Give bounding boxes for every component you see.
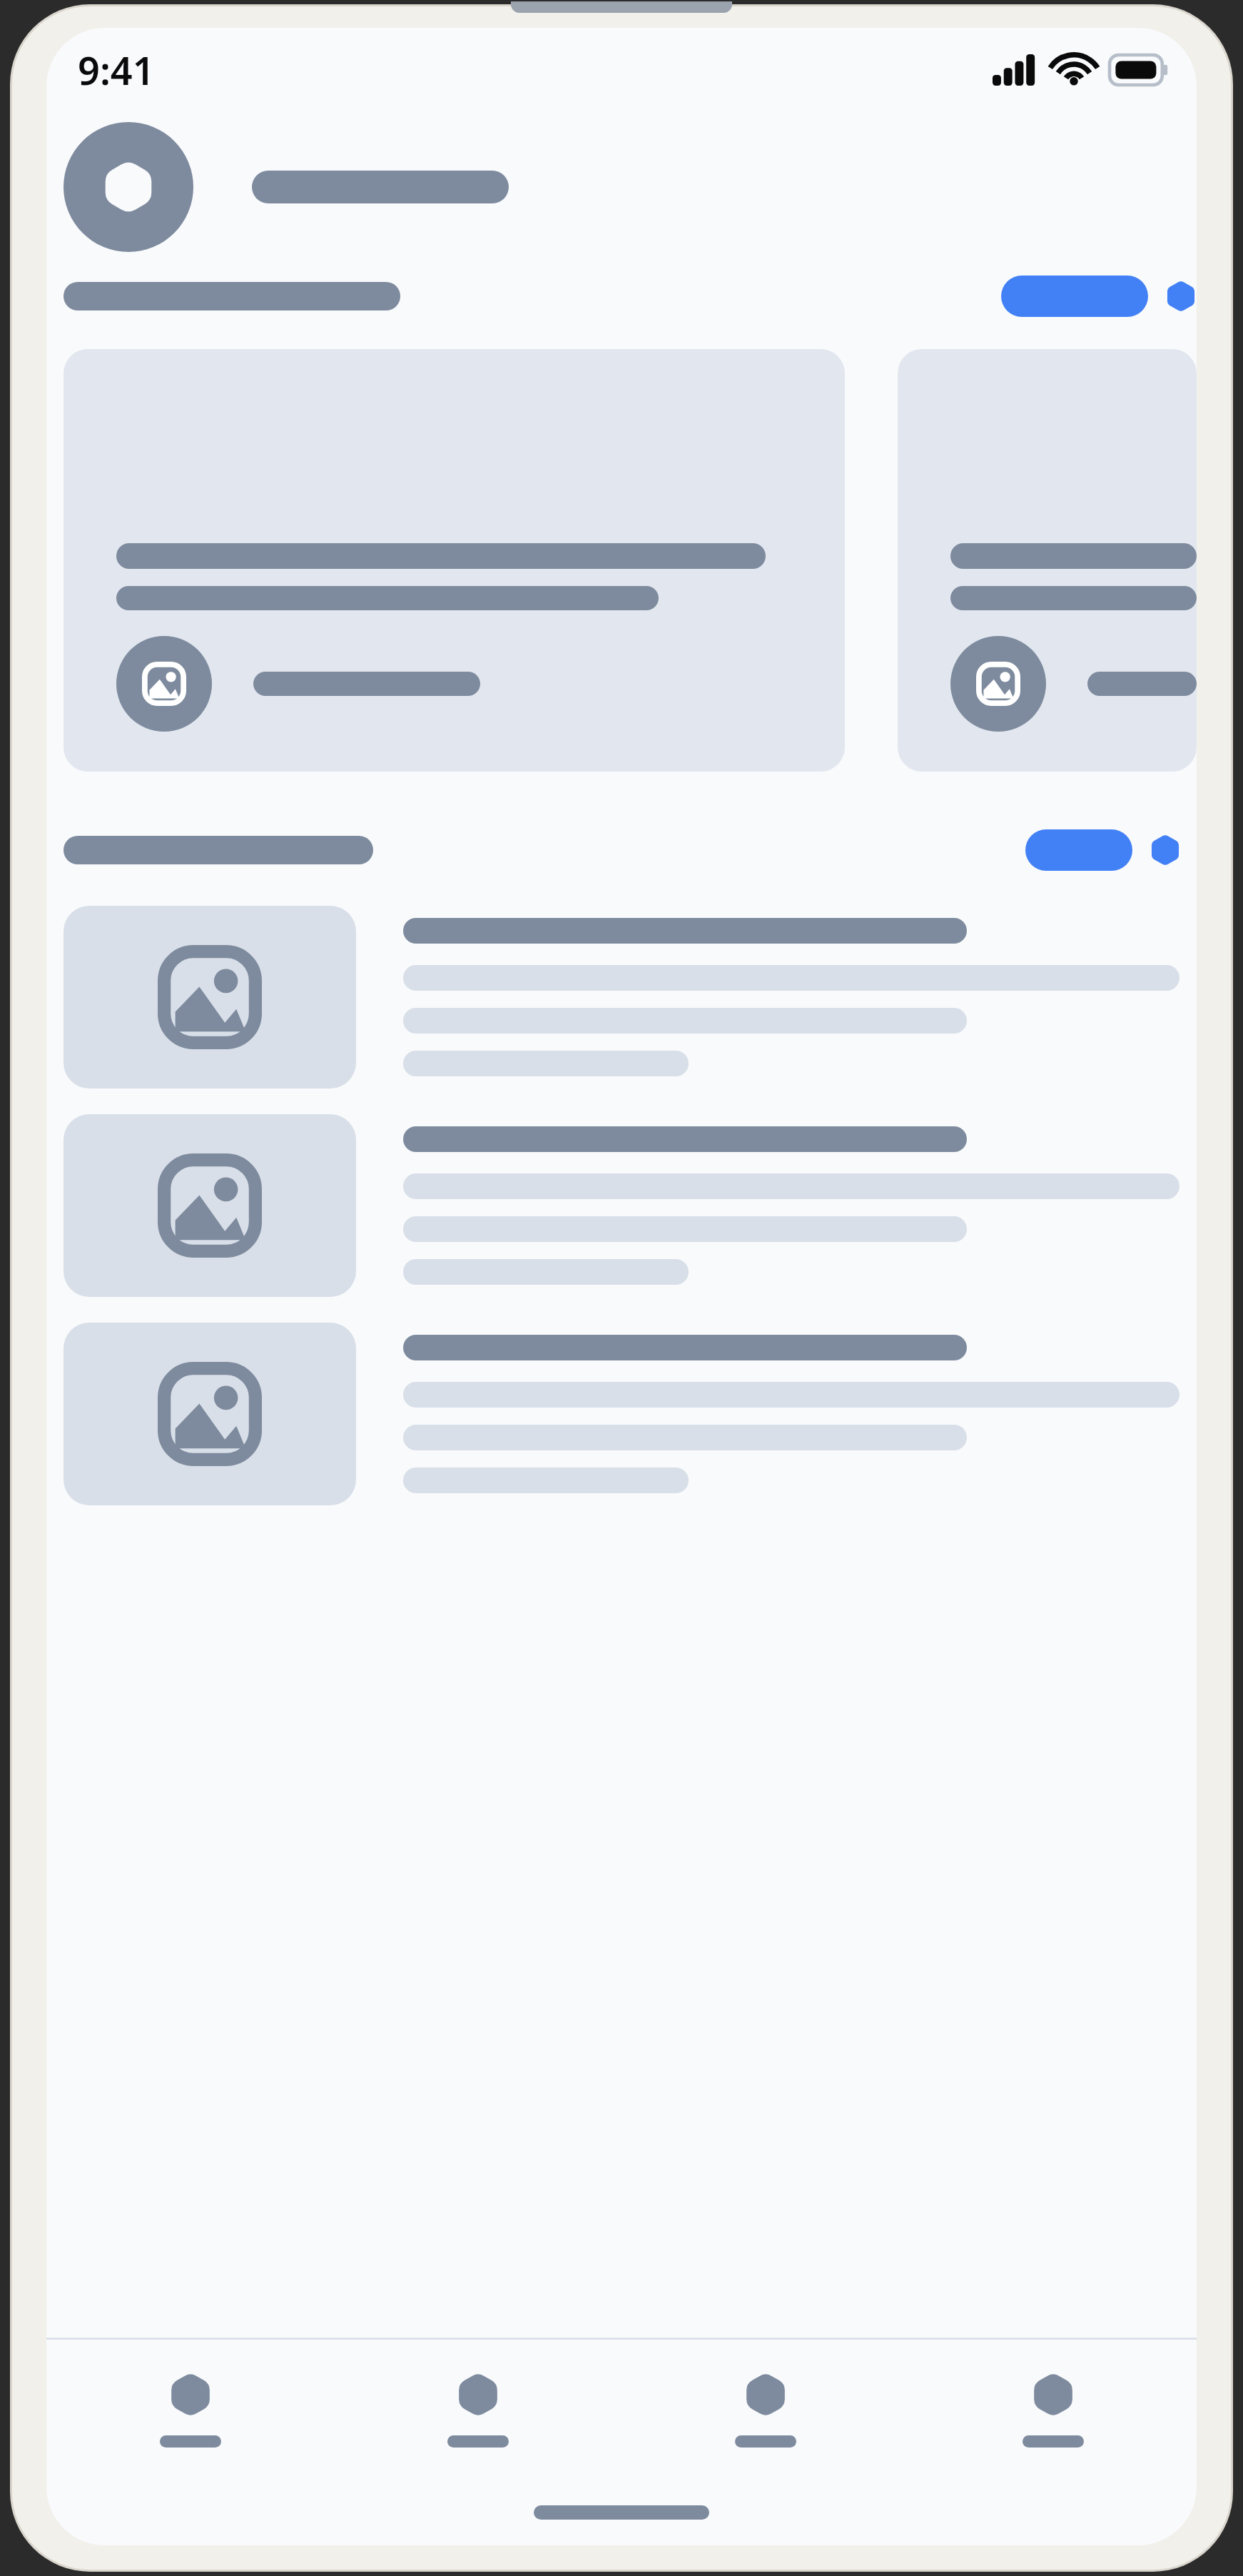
button[interactable]: Action [1001, 276, 1148, 317]
button[interactable] [64, 1114, 1179, 1297]
button[interactable]: More [1165, 281, 1197, 312]
button[interactable] [898, 349, 1197, 772]
button[interactable] [64, 906, 1179, 1089]
button[interactable] [64, 1323, 1179, 1505]
button[interactable]: Profile [64, 122, 193, 252]
button[interactable]: Action [1025, 829, 1132, 871]
button[interactable]: Profile [909, 2340, 1197, 2480]
button[interactable]: Search [334, 2340, 621, 2480]
button[interactable]: More [1150, 834, 1181, 866]
button[interactable]: Home [46, 2340, 334, 2480]
button[interactable] [64, 349, 845, 772]
staticText: 9:41 [78, 44, 155, 96]
button[interactable]: Library [621, 2340, 909, 2480]
